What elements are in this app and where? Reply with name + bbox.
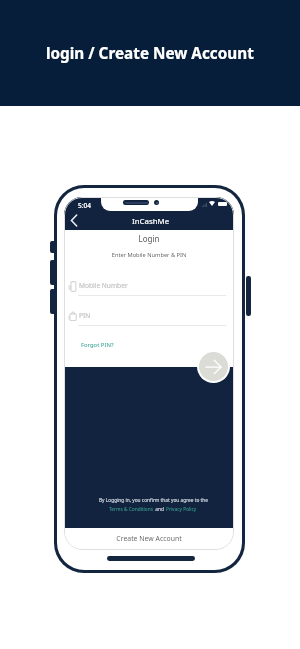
staticText: PIN [79,311,91,320]
button[interactable]: Privacy Policy [166,506,197,513]
button[interactable]: Create New Account [64,527,234,550]
button[interactable]: Continue [197,350,230,383]
staticText: By Logging in, you confirm that you agre… [99,497,208,504]
staticText: Create New Account [116,534,182,543]
staticText: Mobile Number [79,281,128,290]
staticText: 5:04 [78,201,91,210]
button[interactable]: Terms & Conditions [109,506,154,513]
staticText: Enter Mobile Number & PIN [64,251,234,259]
staticText: login / Create New Account [46,43,254,64]
staticText: and [154,506,166,513]
staticText: Login [64,233,234,244]
button[interactable]: Back [64,212,84,230]
staticText: InCashMe [132,216,170,227]
button[interactable]: Forgot PIN? [81,341,114,349]
